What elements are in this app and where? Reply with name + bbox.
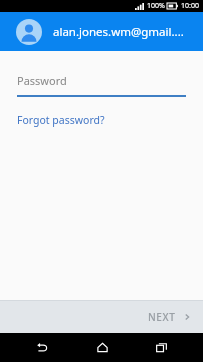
- staticText: NEXT: [148, 310, 176, 324]
- staticText: alan.jones.wm@gmail....: [53, 24, 184, 40]
- staticText: 10:00: [181, 1, 199, 11]
- staticText: 100%: [147, 1, 165, 11]
- button[interactable]: NEXT: [136, 304, 203, 330]
- button[interactable]: Password: [0, 73, 203, 97]
- staticText: Forgot password?: [17, 113, 105, 127]
- button[interactable]: alan.jones.wm@gmail....: [0, 12, 203, 51]
- button[interactable]: Home: [85, 333, 119, 362]
- staticText: Password: [17, 73, 67, 88]
- button[interactable]: Recent apps: [144, 333, 178, 362]
- button[interactable]: Back: [25, 333, 59, 362]
- button[interactable]: Forgot password?: [0, 111, 122, 129]
